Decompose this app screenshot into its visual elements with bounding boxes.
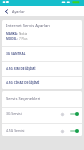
button[interactable]: Bilgi: [59, 111, 65, 117]
staticText: 4.5G Servisi: [6, 128, 25, 133]
button[interactable]: 3G Servisi: [2, 108, 82, 123]
button[interactable]: Servis ac kapat: [70, 128, 79, 134]
staticText: Internet Servis Ayarları: [6, 23, 50, 29]
staticText: 4.5G CİHAZ DEĞİŞİMİ: [6, 81, 40, 85]
staticText: MARKA:: [6, 32, 18, 36]
staticText: 7 Plus: [19, 37, 28, 41]
staticText: 3G SANTRAL: [6, 52, 26, 56]
staticText: 4.5G SIM DEĞİŞİMİ: [6, 67, 36, 71]
button[interactable]: 3G SANTRAL: [2, 47, 82, 61]
button[interactable]: Bilgi: [59, 128, 65, 134]
staticText: Servis Seçenekleri: [6, 96, 41, 102]
button[interactable]: 4.5G SIM DEĞİŞİMİ: [2, 62, 82, 76]
staticText: Ayarlar: [12, 9, 25, 14]
staticText: 3G Servisi: [6, 111, 22, 116]
button[interactable]: Servis ac kapat: [70, 111, 79, 117]
button[interactable]: 4.5G CİHAZ DEĞİŞİMİ: [2, 77, 82, 89]
button[interactable]: 4.5G Servisi: [2, 124, 82, 136]
button[interactable]: Geri: [0, 6, 12, 16]
staticText: MODEL:: [6, 37, 18, 41]
staticText: Nokia: [19, 32, 28, 36]
